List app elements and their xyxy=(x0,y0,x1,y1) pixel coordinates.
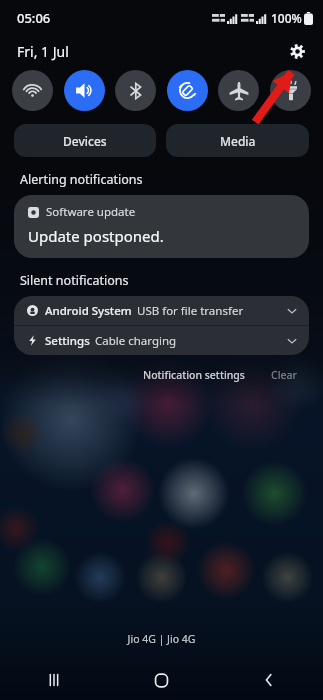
staticText: Fri, 1 Jul xyxy=(17,42,69,61)
button[interactable]: Devices xyxy=(14,124,156,157)
staticText: Android System xyxy=(45,303,132,319)
staticText: Jio 4G | Jio 4G xyxy=(0,632,323,646)
staticText: Alerting notifications xyxy=(20,171,143,188)
button[interactable]: Bluetooth xyxy=(115,70,156,111)
button[interactable]: Android System xyxy=(14,296,309,325)
button[interactable]: Auto rotate xyxy=(167,70,208,111)
button[interactable]: Flashlight xyxy=(270,70,311,111)
button[interactable]: Home xyxy=(107,660,215,700)
staticText: Silent notifications xyxy=(20,272,129,289)
staticText: Settings xyxy=(45,333,90,349)
button[interactable]: Back xyxy=(215,660,323,700)
staticText: 05:06 xyxy=(17,9,51,27)
button[interactable]: Sound xyxy=(64,70,105,111)
button[interactable]: Clear xyxy=(267,366,301,384)
button[interactable]: Software update xyxy=(14,195,309,258)
button[interactable]: Media xyxy=(166,124,309,157)
staticText: 100% xyxy=(271,10,302,26)
staticText: Clear xyxy=(271,368,297,382)
button[interactable]: Notification settings xyxy=(139,366,249,384)
button[interactable]: Airplane mode xyxy=(218,70,259,111)
staticText: Update postponed. xyxy=(28,226,164,246)
staticText: Devices xyxy=(63,133,107,149)
staticText: Media xyxy=(220,133,256,149)
button[interactable]: Recents xyxy=(0,660,107,700)
button[interactable]: Wi-Fi xyxy=(12,70,53,111)
staticText: Cable charging xyxy=(95,333,177,349)
staticText: Notification settings xyxy=(143,368,245,382)
button[interactable]: Settings xyxy=(284,38,310,64)
staticText: Software update xyxy=(46,204,136,220)
button[interactable]: Settings xyxy=(14,326,309,355)
staticText: USB for file transfer xyxy=(137,303,244,319)
